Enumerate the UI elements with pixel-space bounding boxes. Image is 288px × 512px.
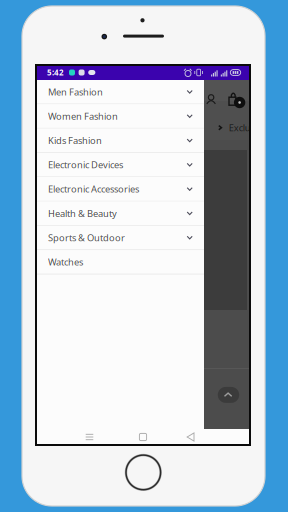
button[interactable]: Account xyxy=(204,93,218,106)
staticText: Men Fashion xyxy=(48,86,103,98)
staticText: Exclusive xyxy=(229,121,267,134)
button[interactable]: Men Fashion xyxy=(36,80,204,104)
staticText: Electronic Accessories xyxy=(48,183,139,195)
staticText: Watches xyxy=(48,256,83,268)
button[interactable]: Health & Beauty xyxy=(36,201,204,226)
staticText: 5:42 xyxy=(47,67,64,78)
button[interactable]: Kids Fashion xyxy=(36,129,204,153)
button[interactable]: Electronic Devices xyxy=(36,153,204,177)
staticText: Health & Beauty xyxy=(48,207,117,219)
staticText: Kids Fashion xyxy=(48,134,102,147)
staticText: Women Fashion xyxy=(48,110,118,122)
button[interactable]: Scroll to top xyxy=(216,385,241,405)
button[interactable]: Sports & Outdoor xyxy=(36,226,204,250)
staticText: Electronic Devices xyxy=(48,158,123,171)
button[interactable]: Home xyxy=(131,429,155,445)
button[interactable]: Women Fashion xyxy=(36,104,204,129)
button[interactable]: Back xyxy=(178,429,202,445)
button[interactable]: Electronic Accessories xyxy=(36,177,204,201)
button[interactable]: Watches xyxy=(36,250,204,274)
button[interactable]: Recent apps xyxy=(77,429,101,445)
button[interactable]: Cart xyxy=(226,91,248,110)
staticText: Sports & Outdoor xyxy=(48,231,125,244)
